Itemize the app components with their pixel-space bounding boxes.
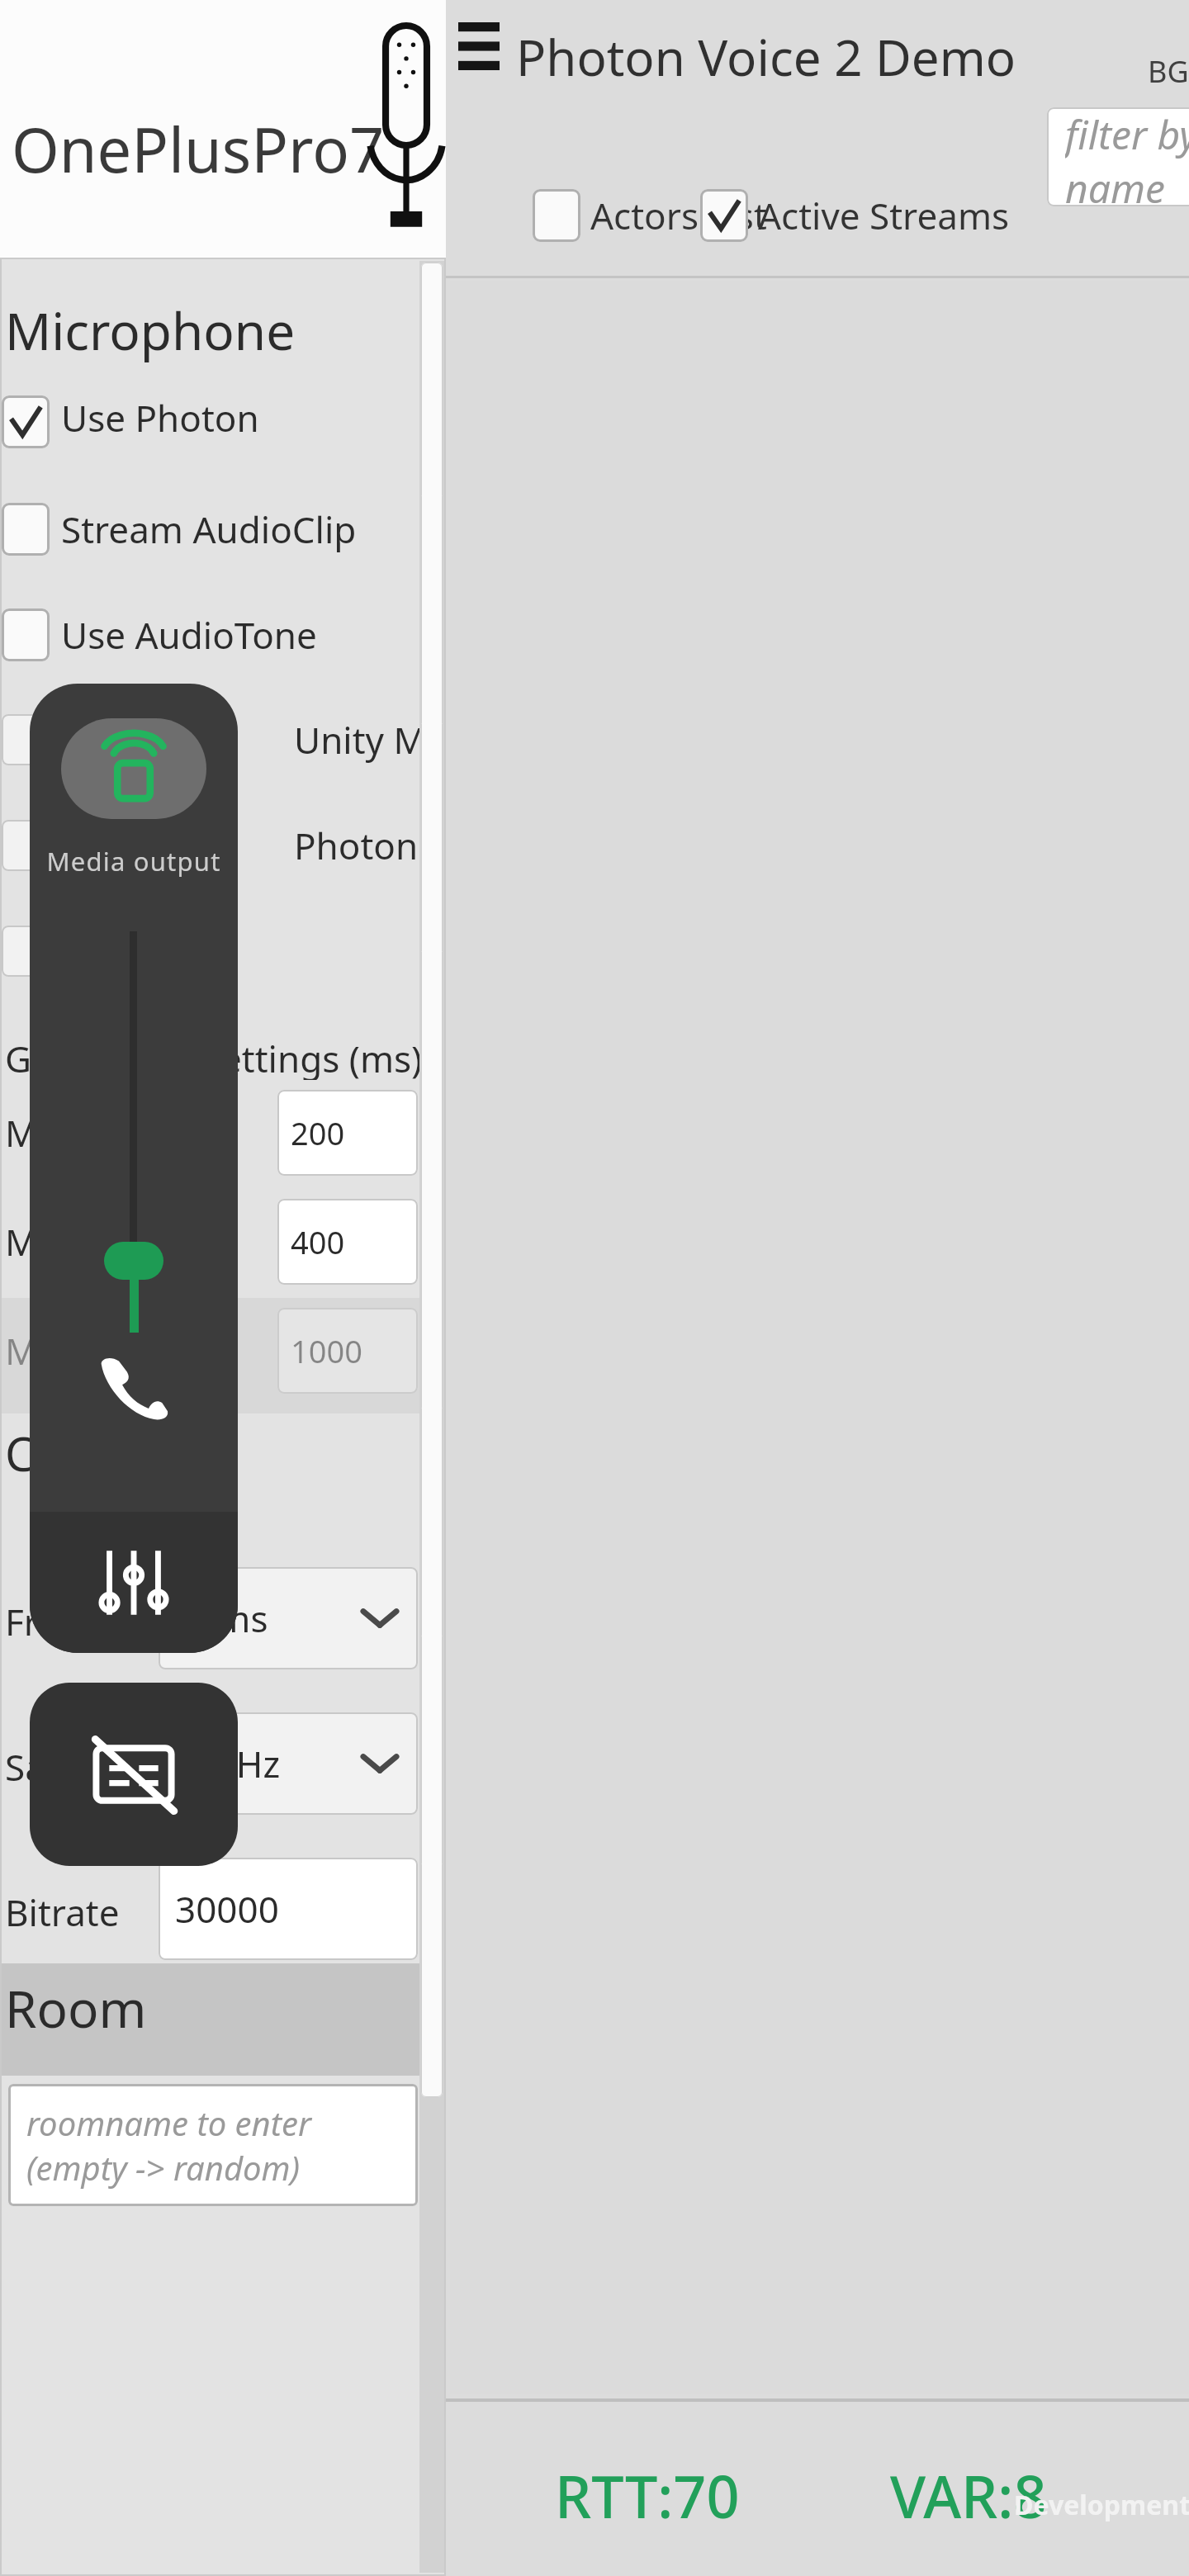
staticText: Microphone <box>5 296 296 365</box>
staticText: Room <box>5 1973 147 2043</box>
staticText: ettings (ms) <box>221 1034 423 1080</box>
button[interactable]: Media output <box>61 718 206 819</box>
staticText: 30000 <box>175 1884 279 1934</box>
staticText: BG <box>1148 51 1189 92</box>
button[interactable]: Call volume <box>92 1344 175 1427</box>
staticText: Ma <box>5 1326 59 1376</box>
button[interactable]: 400 <box>277 1199 418 1285</box>
staticText: Active Streams <box>758 191 1010 240</box>
staticText: Mi <box>5 1108 48 1158</box>
staticText: 200 <box>291 1111 345 1154</box>
staticText: 1000 <box>291 1329 362 1372</box>
button[interactable]: Sound settings <box>30 1512 238 1653</box>
button[interactable]: 48kHz <box>159 1712 418 1815</box>
button[interactable]: Use Photon MicrophoneType <box>0 393 446 451</box>
staticText: Use Photon MicrophoneType <box>61 393 446 451</box>
button[interactable]: Photon <box>0 816 446 875</box>
staticText: Photon <box>294 821 419 870</box>
staticText: Development Build <box>1014 2487 1189 2523</box>
staticText: Frame Duration <box>5 1597 273 1646</box>
button[interactable]: 200 <box>277 1090 418 1176</box>
button[interactable]: 20ms <box>159 1567 418 1669</box>
staticText: OnePlusPro7 <box>12 107 385 191</box>
staticText: 48kHz <box>175 1739 281 1788</box>
button[interactable]: 30000 <box>159 1858 418 1960</box>
staticText: VAR:8 <box>890 2456 1047 2535</box>
staticText: Bitrate <box>5 1887 120 1937</box>
button[interactable]: Microphone <box>357 7 456 251</box>
button[interactable]: Volume slider <box>104 1242 163 1280</box>
staticText: Photon Voice 2 Demo <box>516 23 1016 91</box>
button[interactable]: Menu <box>452 17 505 76</box>
button[interactable]: roomname to enter (empty -> random) <box>8 2084 418 2206</box>
staticText: C <box>5 1422 35 1485</box>
button[interactable]: 1000 <box>277 1308 418 1394</box>
button[interactable]: Use AudioTone <box>0 606 446 664</box>
staticText: Glo <box>5 1034 64 1080</box>
staticText: roomname to enter (empty -> random) <box>26 2100 418 2190</box>
button[interactable]: Stream AudioClip <box>0 500 446 558</box>
staticText: Actors List <box>590 191 767 240</box>
staticText: filter by name <box>1065 107 1189 206</box>
staticText: Sampling Rate <box>5 1742 252 1792</box>
staticText: Use AudioTone <box>61 610 317 660</box>
staticText: RTT:70 <box>555 2456 740 2535</box>
button[interactable]: Actors List <box>533 183 767 248</box>
staticText: Ma <box>5 1217 59 1267</box>
staticText: Unity Microphone (Photon) <box>294 715 446 765</box>
staticText: Media output <box>30 844 238 878</box>
staticText: 20ms <box>175 1593 268 1643</box>
button[interactable]: filter by name <box>1047 107 1189 206</box>
button[interactable]: Captions off <box>30 1683 238 1866</box>
staticText: 400 <box>291 1220 345 1263</box>
button[interactable]: Active Streams <box>700 183 1010 248</box>
button[interactable]: Unity Microphone (Photon) <box>0 710 446 769</box>
staticText: Stream AudioClip <box>61 504 357 554</box>
button[interactable] <box>0 921 446 981</box>
